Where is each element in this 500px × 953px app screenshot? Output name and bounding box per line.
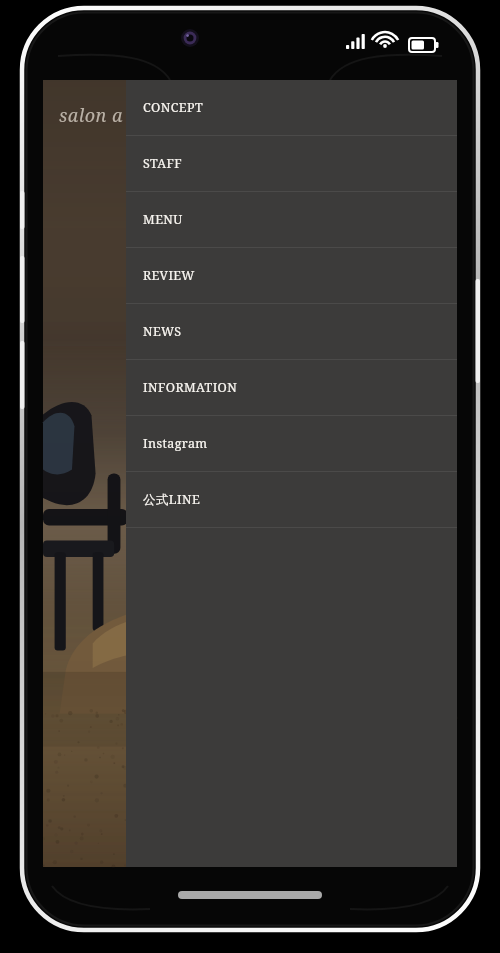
button[interactable]: REVIEW — [126, 248, 457, 304]
staticText: Instagram — [143, 435, 208, 452]
staticText: CONCEPT — [143, 99, 203, 116]
button[interactable]: CONCEPT — [126, 80, 457, 136]
staticText: 公式LINE — [143, 491, 201, 508]
staticText: NEWS — [143, 323, 182, 340]
staticText: STAFF — [143, 155, 183, 172]
button[interactable]: 公式LINE — [126, 472, 457, 528]
button[interactable]: STAFF — [126, 136, 457, 192]
button[interactable]: NEWS — [126, 304, 457, 360]
staticText: REVIEW — [143, 267, 195, 284]
staticText: MENU — [143, 211, 183, 228]
staticText: INFORMATION — [143, 379, 238, 396]
button[interactable]: INFORMATION — [126, 360, 457, 416]
button[interactable]: MENU — [126, 192, 457, 248]
button[interactable]: Instagram — [126, 416, 457, 472]
staticText: salon a — [59, 103, 123, 128]
